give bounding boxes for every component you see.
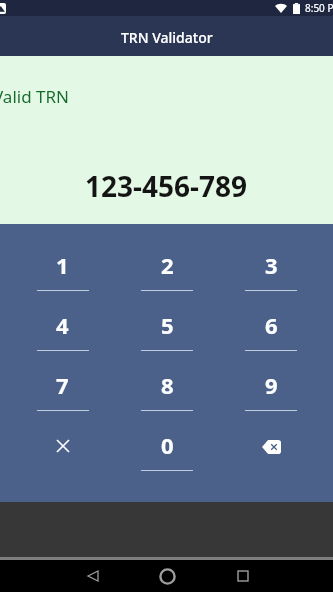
staticText: 7 <box>56 370 69 400</box>
button[interactable]: Home <box>147 560 187 592</box>
button[interactable]: 4 <box>10 284 115 344</box>
button[interactable]: Backspace <box>219 404 323 464</box>
staticText: 0 <box>161 430 174 460</box>
staticText: 4 <box>56 310 69 340</box>
staticText: Valid TRN <box>0 85 69 108</box>
button[interactable]: 7 <box>10 344 115 404</box>
button[interactable]: 1 <box>10 224 115 284</box>
button[interactable]: 3 <box>219 224 323 284</box>
staticText: 2 <box>161 250 174 280</box>
staticText: 3 <box>265 250 278 280</box>
button[interactable]: 5 <box>115 284 219 344</box>
staticText: 123-456-789 <box>85 167 248 205</box>
staticText: 9 <box>265 370 278 400</box>
staticText: TRN Validator <box>121 28 213 47</box>
button[interactable]: 8 <box>115 344 219 404</box>
button[interactable]: 0 <box>115 404 219 464</box>
button[interactable]: Recent apps <box>223 560 263 592</box>
staticText: 8 <box>161 370 174 400</box>
button[interactable]: 2 <box>115 224 219 284</box>
staticText: 6 <box>265 310 278 340</box>
staticText: 8:50 PM <box>305 1 333 15</box>
staticText: 1 <box>56 250 69 280</box>
button[interactable]: 6 <box>219 284 323 344</box>
button[interactable]: Clear <box>10 404 115 464</box>
button[interactable]: Back <box>73 560 113 592</box>
staticText: 5 <box>161 310 174 340</box>
button[interactable]: 9 <box>219 344 323 404</box>
